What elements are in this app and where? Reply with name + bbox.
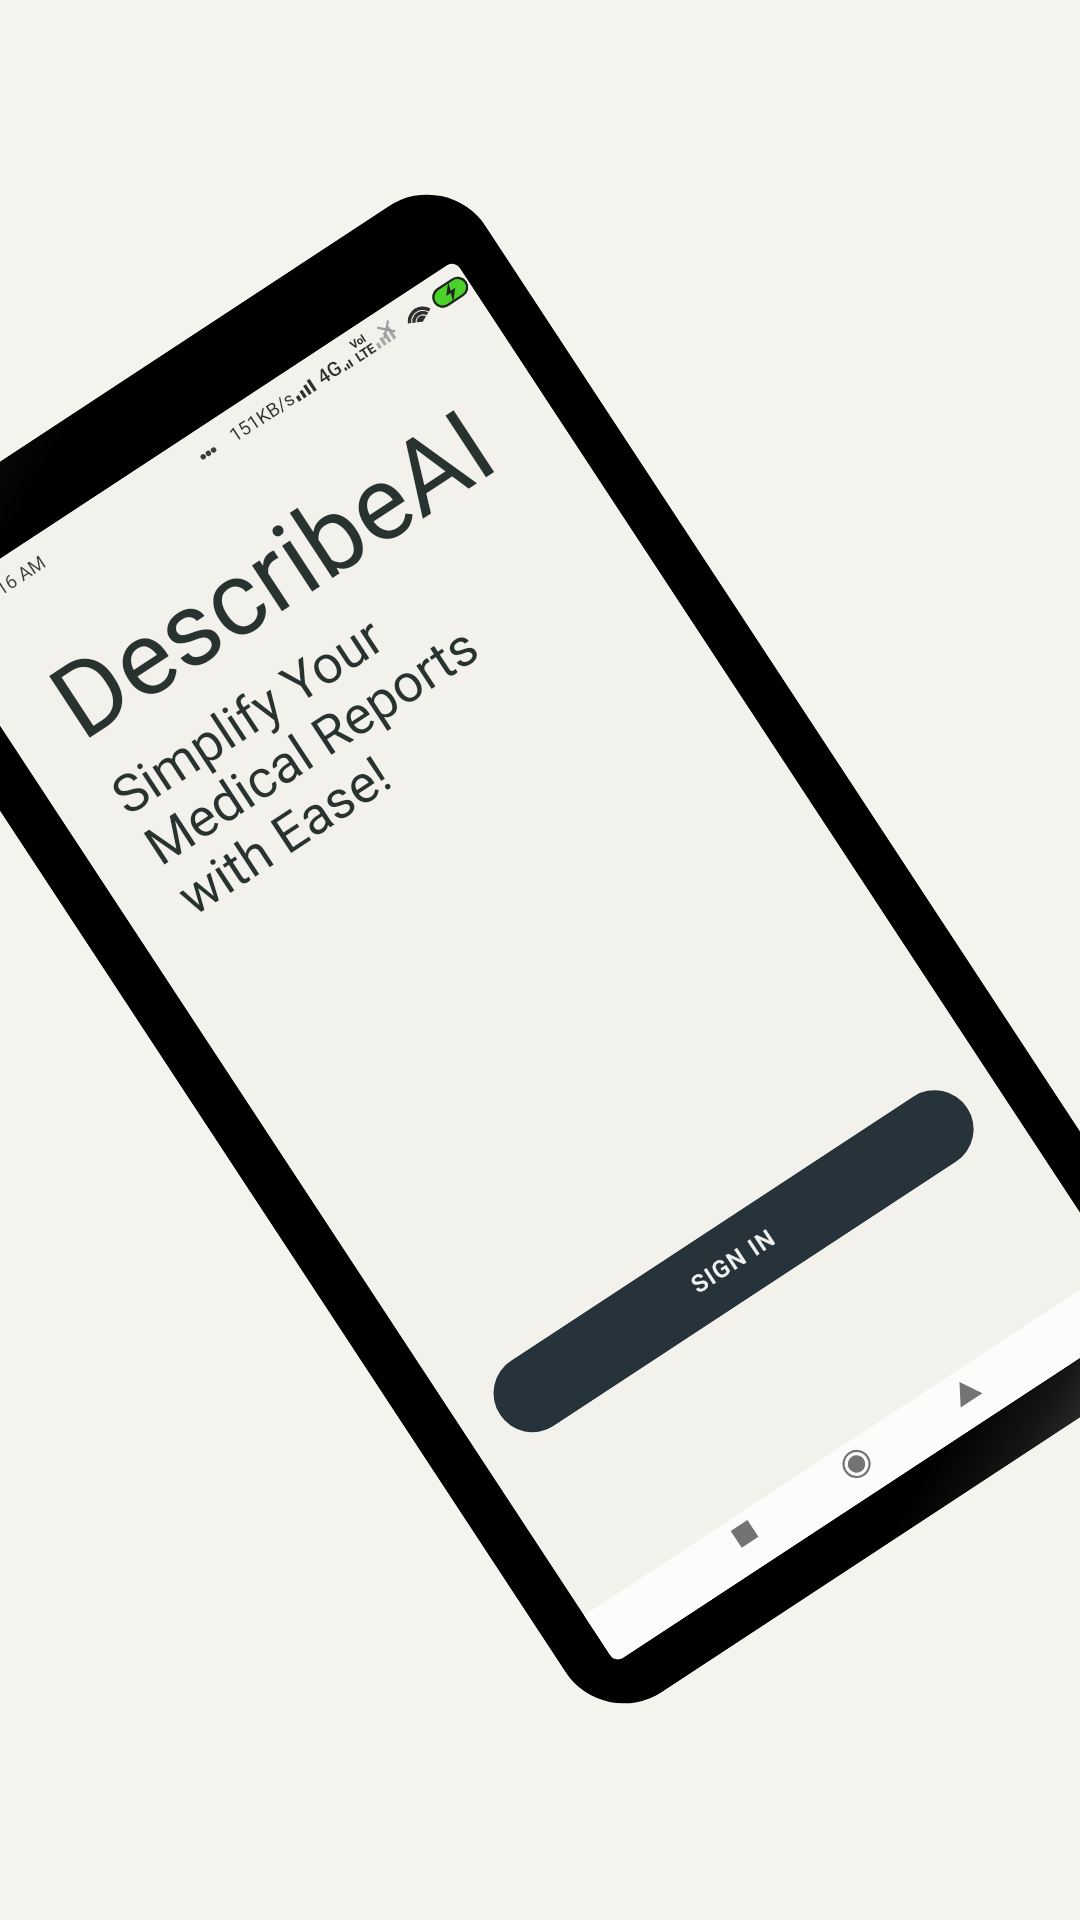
staticText: LTE <box>353 341 378 365</box>
staticText: 151KB/s <box>225 387 299 446</box>
button[interactable]: Back <box>938 1363 993 1419</box>
button[interactable]: Home <box>829 1436 884 1492</box>
staticText: Vol <box>348 332 368 352</box>
staticText: 4G <box>312 355 346 388</box>
staticText: Simplify Your Medical Reports with Ease! <box>101 564 522 928</box>
staticText: SIGN IN <box>686 1223 781 1299</box>
staticText: DescribeAI <box>30 387 516 764</box>
button[interactable]: Recent apps <box>717 1506 772 1562</box>
button[interactable]: SIGN IN <box>478 1075 989 1447</box>
staticText: 9:16 AM <box>0 550 50 608</box>
